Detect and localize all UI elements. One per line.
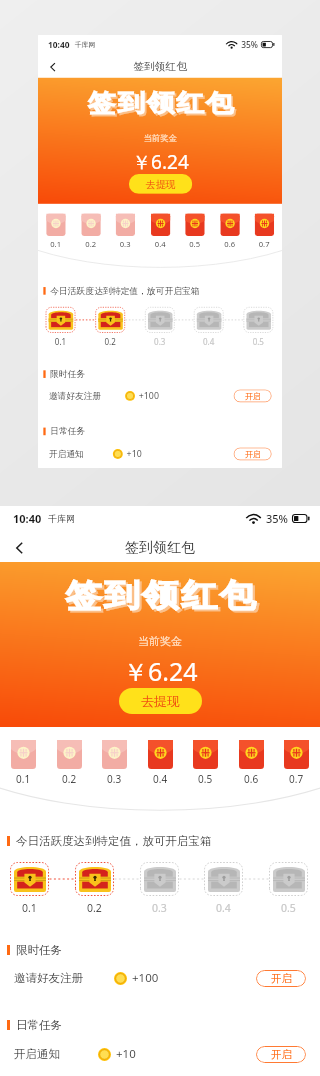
- staticText: 0.5: [281, 901, 296, 915]
- staticText: 签到领红包: [89, 90, 236, 120]
- staticText: 0.2: [87, 901, 102, 915]
- button[interactable]: Chest 0.1: [10, 862, 49, 915]
- staticText: +100: [139, 389, 159, 402]
- button[interactable]: 开启: [233, 447, 272, 460]
- staticText: 邀请好友注册: [14, 971, 83, 985]
- staticText: 0.3: [107, 772, 122, 786]
- staticText: 35%: [241, 39, 258, 50]
- staticText: 开启通知: [14, 1047, 60, 1061]
- staticText: 0.4: [216, 901, 231, 915]
- button[interactable]: Chest 0.5: [243, 307, 273, 347]
- staticText: 0.3: [120, 238, 131, 249]
- staticText: 去提现: [141, 693, 180, 709]
- button[interactable]: Chest 0.3: [145, 307, 175, 347]
- staticText: 当前奖金: [143, 133, 177, 143]
- staticText: 0.1: [16, 772, 31, 786]
- staticText: 0.2: [62, 772, 77, 786]
- staticText: 35%: [266, 511, 288, 526]
- staticText: 0.2: [85, 238, 97, 249]
- staticText: +100: [132, 970, 159, 986]
- staticText: 0.1: [55, 337, 66, 347]
- staticText: ￥6.24: [132, 148, 189, 174]
- staticText: 0.4: [203, 337, 214, 347]
- button[interactable]: Chest 0.2: [95, 307, 125, 347]
- staticText: 千库网: [48, 513, 75, 524]
- staticText: 0.4: [155, 238, 166, 249]
- button[interactable]: Chest 0.5: [269, 862, 308, 915]
- button[interactable]: Red packet 0.6: [239, 740, 264, 786]
- button[interactable]: Red packet 0.5: [193, 740, 218, 786]
- staticText: 开启: [245, 391, 261, 401]
- staticText: 去提现: [146, 178, 175, 190]
- staticText: 10:40: [48, 39, 70, 50]
- staticText: 0.1: [50, 238, 62, 249]
- button[interactable]: 开启: [256, 970, 306, 987]
- staticText: 10:40: [13, 511, 42, 526]
- staticText: 0.1: [22, 901, 37, 915]
- staticText: 今日活跃度达到特定值，放可开启宝箱: [16, 834, 212, 848]
- staticText: 签到领红包: [125, 539, 195, 557]
- staticText: 开启: [271, 1048, 292, 1061]
- staticText: +10: [116, 1046, 136, 1062]
- staticText: +10: [127, 447, 142, 460]
- staticText: 0.7: [289, 772, 304, 786]
- button[interactable]: Red packet 0.4: [148, 740, 173, 786]
- button[interactable]: Red packet 0.6: [220, 214, 240, 249]
- staticText: 0.5: [198, 772, 213, 786]
- staticText: 开启通知: [49, 448, 84, 459]
- staticText: 签到领红包: [64, 576, 257, 615]
- staticText: 开启: [245, 449, 261, 459]
- staticText: 签到领红包: [133, 60, 187, 74]
- button[interactable]: 去提现: [119, 688, 202, 714]
- button[interactable]: Red packet 0.4: [151, 214, 170, 249]
- staticText: 当前奖金: [138, 634, 182, 648]
- staticText: 日常任务: [16, 1018, 62, 1032]
- staticText: 0.2: [104, 337, 116, 347]
- staticText: 今日活跃度达到特定值，放可开启宝箱: [50, 285, 200, 296]
- staticText: 0.5: [189, 238, 201, 249]
- button[interactable]: Red packet 0.1: [46, 214, 65, 249]
- button[interactable]: Red packet 0.1: [11, 740, 36, 786]
- button[interactable]: Chest 0.4: [194, 307, 224, 347]
- button[interactable]: 开启: [256, 1046, 306, 1063]
- button[interactable]: Red packet 0.3: [116, 214, 135, 249]
- button[interactable]: Red packet 0.3: [102, 740, 127, 786]
- button[interactable]: Chest 0.4: [204, 862, 243, 915]
- staticText: 开启: [271, 972, 292, 985]
- staticText: 限时任务: [16, 943, 62, 957]
- button[interactable]: Back: [43, 57, 62, 77]
- button[interactable]: Red packet 0.5: [185, 214, 204, 249]
- button[interactable]: Red packet 0.2: [81, 214, 101, 249]
- staticText: 0.5: [253, 337, 264, 347]
- staticText: 0.6: [244, 772, 259, 786]
- staticText: 0.6: [224, 238, 236, 249]
- button[interactable]: Chest 0.3: [140, 862, 179, 915]
- staticText: 0.7: [259, 238, 270, 249]
- button[interactable]: 去提现: [129, 174, 192, 194]
- staticText: ￥6.24: [123, 654, 198, 688]
- button[interactable]: Chest 0.1: [46, 307, 75, 347]
- button[interactable]: Red packet 0.2: [57, 740, 82, 786]
- staticText: 0.3: [152, 901, 167, 915]
- button[interactable]: Red packet 0.7: [284, 740, 309, 786]
- staticText: 千库网: [75, 40, 95, 49]
- staticText: 日常任务: [50, 426, 85, 437]
- staticText: 签到领红包: [66, 578, 259, 617]
- staticText: 0.3: [154, 337, 166, 347]
- button[interactable]: Back: [6, 535, 32, 561]
- staticText: 签到领红包: [87, 88, 234, 118]
- staticText: 限时任务: [50, 369, 85, 379]
- button[interactable]: Chest 0.2: [75, 862, 114, 915]
- staticText: 0.4: [153, 772, 168, 786]
- button[interactable]: 开启: [233, 389, 272, 402]
- button[interactable]: Red packet 0.7: [255, 214, 274, 249]
- staticText: 邀请好友注册: [49, 390, 101, 401]
